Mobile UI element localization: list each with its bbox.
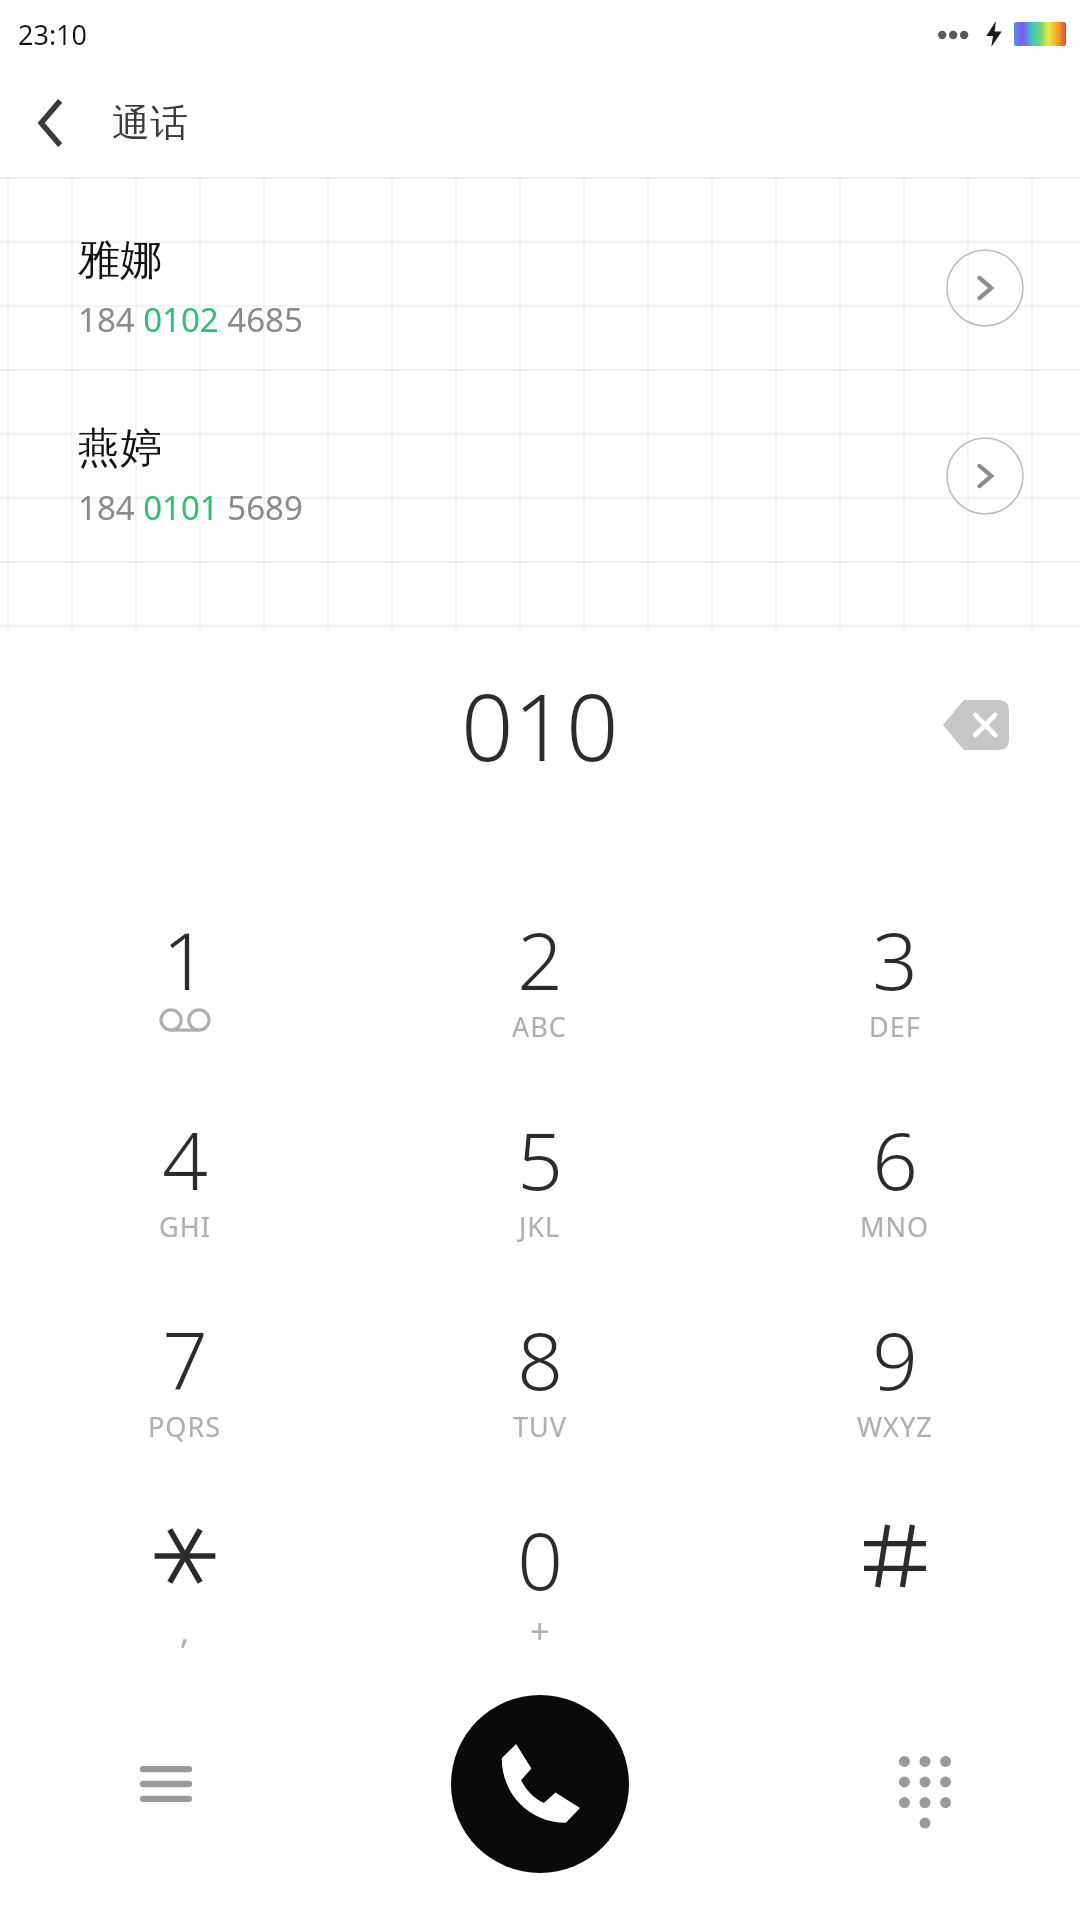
staticText: TUV — [513, 1408, 567, 1445]
staticText: 23:10 — [18, 16, 88, 53]
button[interactable]: 4 — [8, 1104, 362, 1260]
staticText: MNO — [860, 1208, 930, 1245]
button[interactable]: Call details — [946, 437, 1024, 515]
staticText: 3 — [872, 904, 918, 1008]
staticText: 9 — [872, 1304, 918, 1408]
staticText: PQRS — [148, 1408, 222, 1445]
staticText: + — [530, 1608, 550, 1654]
staticText: 4 — [162, 1104, 208, 1208]
staticText: 雅娜 — [78, 234, 162, 287]
staticText: JKL — [519, 1208, 561, 1245]
button[interactable]: Call — [451, 1695, 629, 1873]
button[interactable]: Dialpad — [876, 1736, 972, 1832]
button[interactable]: Back — [18, 91, 82, 155]
button[interactable]: , — [8, 1504, 362, 1660]
staticText: 通话 — [112, 99, 188, 147]
staticText: 184 0101 5689 — [78, 485, 303, 530]
staticText: ABC — [512, 1008, 567, 1045]
button[interactable]: 7 — [8, 1304, 362, 1460]
staticText: DEF — [869, 1008, 921, 1045]
staticText: 5 — [517, 1104, 563, 1208]
button[interactable]: 0 — [362, 1504, 717, 1660]
staticText: 7 — [162, 1304, 208, 1408]
staticText: 184 0102 4685 — [78, 297, 303, 342]
button[interactable]: 燕婷 — [0, 382, 1080, 570]
staticText: 2 — [517, 904, 563, 1008]
button[interactable]: 5 — [362, 1104, 717, 1260]
button[interactable]: 6 — [717, 1104, 1072, 1260]
button[interactable]: 雅娜 — [0, 194, 1080, 382]
button[interactable] — [717, 1504, 1072, 1660]
button[interactable]: 3 — [717, 904, 1072, 1060]
staticText: 6 — [872, 1104, 918, 1208]
button[interactable]: 8 — [362, 1304, 717, 1460]
staticText: GHI — [159, 1208, 211, 1245]
button[interactable]: 2 — [362, 904, 717, 1060]
button[interactable]: Backspace — [916, 670, 1036, 780]
button[interactable]: 9 — [717, 1304, 1072, 1460]
staticText: WXYZ — [857, 1408, 933, 1445]
staticText: 8 — [517, 1304, 563, 1408]
staticText: 0 — [517, 1504, 563, 1608]
staticText: 010 — [461, 663, 619, 788]
button[interactable]: Menu — [118, 1736, 214, 1832]
staticText: , — [180, 1608, 190, 1654]
staticText: 燕婷 — [78, 422, 162, 475]
staticText: 1 — [162, 904, 208, 1008]
button[interactable]: 1 — [8, 904, 362, 1060]
button[interactable]: Call details — [946, 249, 1024, 327]
